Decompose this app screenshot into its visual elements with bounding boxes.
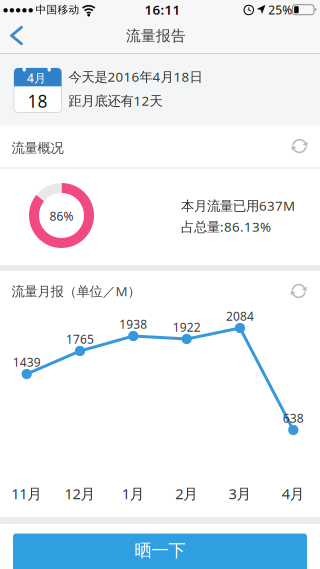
staticText: 晒一下 [134, 540, 185, 561]
staticText: 今天是2016年4月18日 [68, 68, 202, 85]
staticText: 86% [49, 208, 73, 224]
staticText: 1月 [122, 484, 145, 503]
staticText: 流量月报（单位／M） [11, 282, 140, 300]
staticText: 占总量:86.13% [181, 218, 271, 235]
button[interactable]: 晒一下 [13, 533, 307, 569]
staticText: 11月 [11, 484, 42, 503]
staticText: 本月流量已用637M [181, 197, 295, 214]
button[interactable]: Refresh [284, 276, 314, 306]
staticText: 1922 [173, 319, 201, 335]
staticText: 2月 [175, 484, 198, 503]
staticText: 16:11 [144, 1, 180, 18]
staticText: 3月 [228, 484, 251, 503]
staticText: 2084 [226, 308, 254, 324]
staticText: 12月 [64, 484, 95, 503]
staticText: 中国移动 [35, 3, 79, 16]
staticText: 1765 [66, 331, 94, 347]
staticText: 18 [27, 89, 47, 112]
staticText: 4月 [282, 484, 305, 503]
staticText: 4月 [27, 70, 46, 86]
button[interactable]: Refresh [284, 131, 314, 161]
staticText: 1938 [119, 316, 147, 332]
staticText: 638 [283, 410, 304, 426]
button[interactable]: Back [1, 21, 31, 51]
staticText: 距月底还有12天 [68, 92, 162, 109]
staticText: 流量概况 [11, 140, 63, 156]
staticText: 1439 [13, 354, 41, 370]
staticText: 25% [268, 2, 292, 18]
staticText: 流量报告 [126, 27, 186, 45]
